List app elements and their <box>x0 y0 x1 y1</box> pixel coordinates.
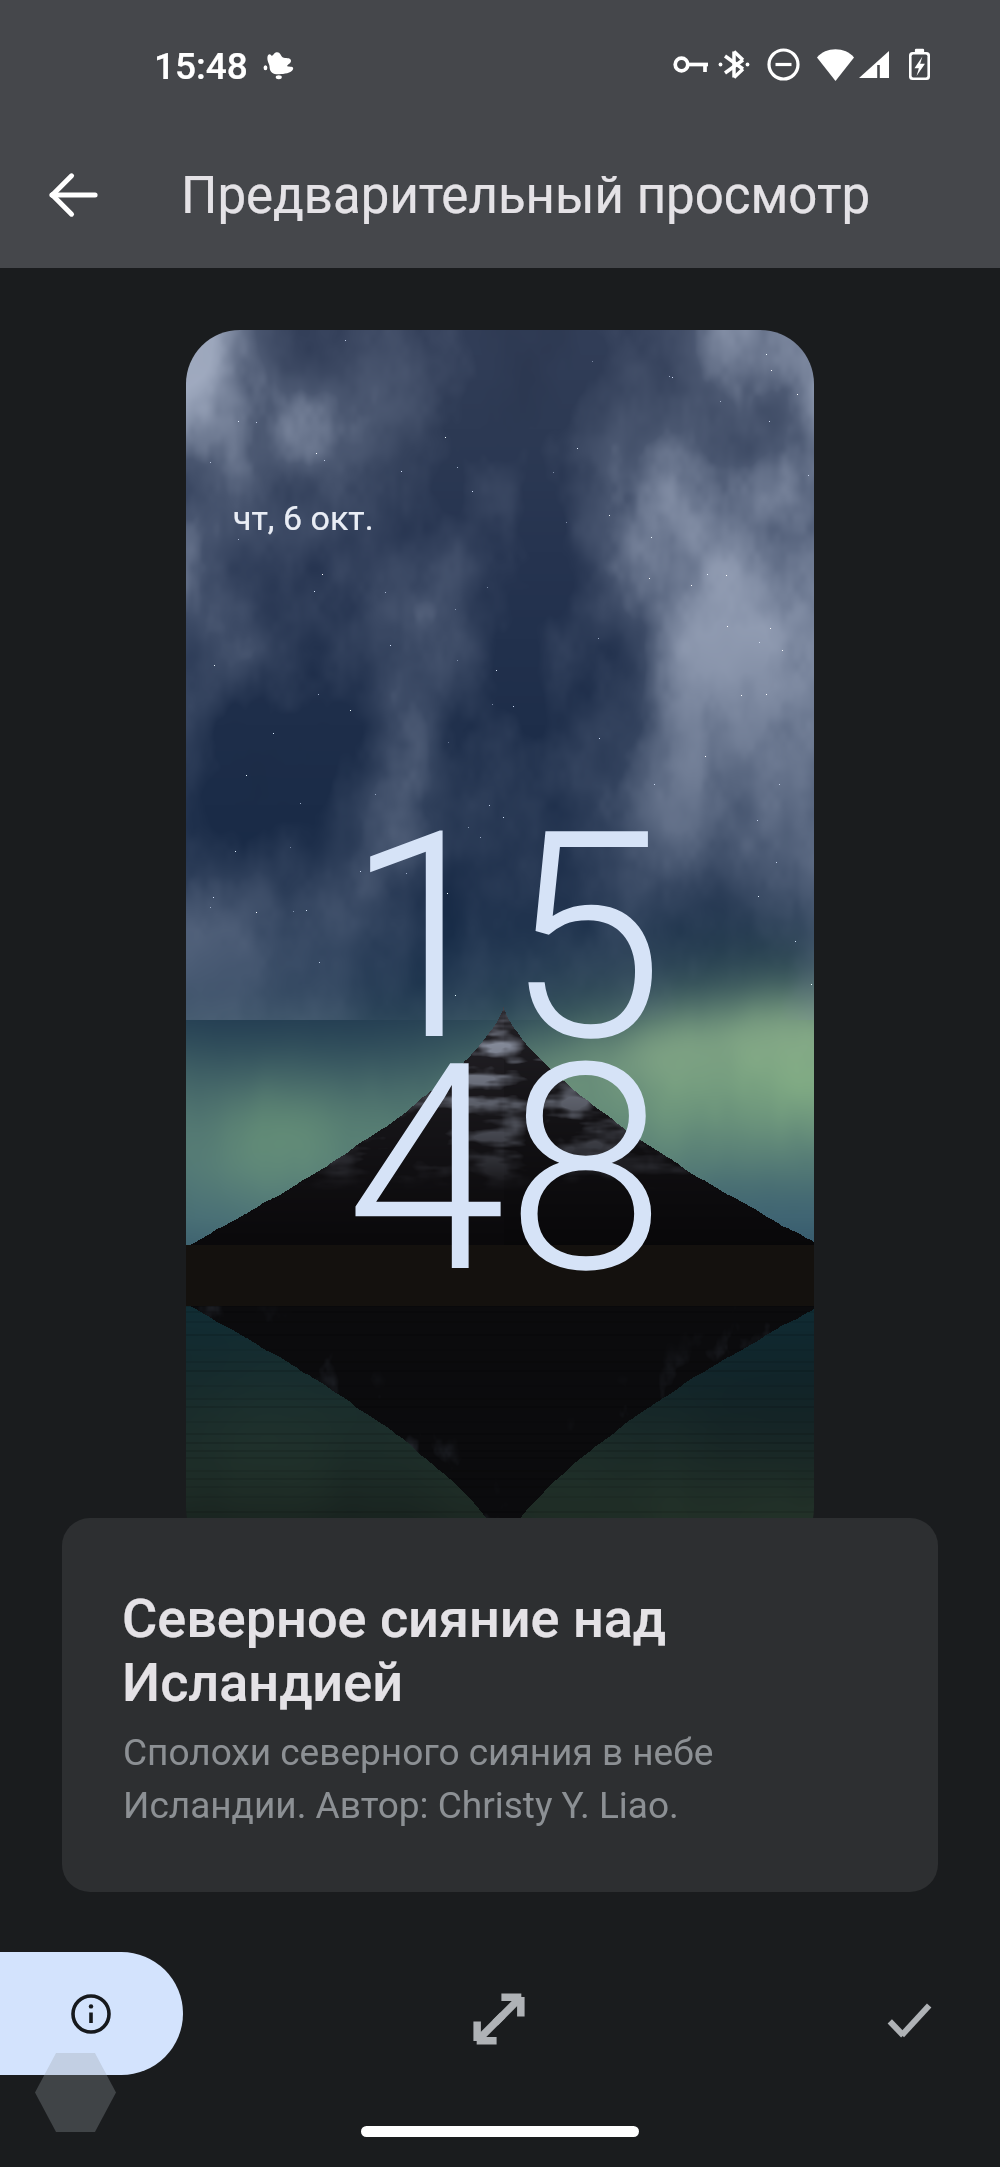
button[interactable]: Северное сияние над Исландией <box>62 1518 938 1892</box>
button[interactable]: Сведения <box>0 1952 183 2075</box>
button[interactable]: Применить <box>863 1973 955 2065</box>
staticText: чт, 6 окт. <box>233 498 374 538</box>
staticText: Предварительный просмотр <box>181 166 871 226</box>
button[interactable]: Развернуть <box>453 1973 545 2065</box>
staticText: Сполохи северного сияния в небе Исландии… <box>123 1731 714 1827</box>
staticText: 15:48 <box>154 45 248 88</box>
staticText: Северное сияние над Исландией <box>122 1587 667 1714</box>
button[interactable]: Предварительный просмотр обоев <box>186 330 814 1562</box>
button[interactable]: Назад <box>25 147 121 243</box>
staticText: 15 <box>345 769 665 1107</box>
staticText: 48 <box>346 1001 666 1339</box>
